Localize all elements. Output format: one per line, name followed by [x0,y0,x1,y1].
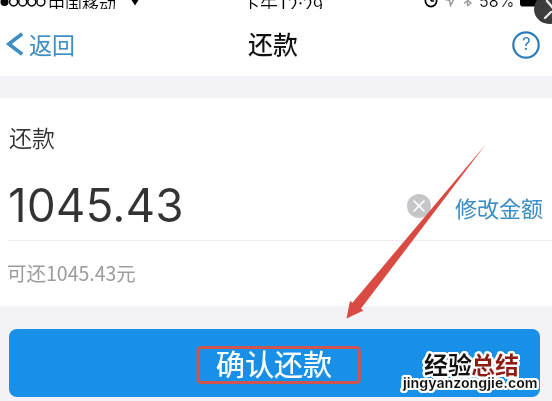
staticText: 总结 [473,345,521,380]
staticText: jingyanzongjie.com [403,376,538,393]
staticText: jingyanzongjie.com [404,376,539,393]
staticText: 总结 [472,347,520,382]
staticText: jingyanzongjie.com [401,375,536,392]
staticText: 总结 [471,345,519,380]
button[interactable]: 确认还款 [9,329,540,397]
staticText: jingyanzongjie.com [401,373,536,390]
staticText: jingyanzongjie.com [403,375,538,392]
staticText: 经验 [423,344,471,379]
staticText: jingyanzongjie.com [404,375,539,392]
button[interactable]: 返回 [7,27,75,60]
staticText: 经验 [422,345,470,380]
staticText: 总结 [471,346,519,381]
staticText: jingyanzongjie.com [405,373,540,390]
staticText: jingyanzongjie.com [402,373,537,390]
staticText: 总结 [472,344,520,379]
staticText: jingyanzongjie.com [403,372,538,389]
staticText: jingyanzongjie.com [403,373,538,390]
staticText: jingyanzongjie.com [402,376,537,393]
staticText: 经验 [423,345,471,380]
staticText: 总结 [471,346,519,381]
staticText: 经验 [426,346,474,381]
staticText: 经验 [424,344,472,379]
staticText: jingyanzongjie.com [402,374,537,391]
staticText: 经验 [425,346,473,381]
staticText: 可还1045.43元 [7,258,136,286]
staticText: jingyanzongjie.com [404,372,539,389]
staticText: 58% [479,0,515,9]
staticText: 确认还款 [216,342,333,384]
staticText: 中国移动 [48,0,116,9]
staticText: 经验 [423,347,471,382]
staticText: 总结 [472,346,520,381]
staticText: 经验 [422,346,470,381]
staticText: 总结 [470,347,518,382]
staticText: ? [522,34,531,55]
staticText: 总结 [470,348,518,383]
staticText: 经验 [424,348,472,383]
staticText: 总结 [473,347,521,382]
staticText: 经验 [425,347,473,382]
staticText: 经验 [423,348,471,383]
staticText: jingyanzongjie.com [403,374,538,391]
staticText: jingyanzongjie.com [404,374,539,391]
staticText: 经验 [425,344,473,379]
staticText: 总结 [471,344,519,379]
staticText: 总结 [469,347,517,382]
staticText: 修改金额 [455,191,544,223]
staticText: 下午12:29 [242,0,323,9]
staticText: 总结 [470,346,518,381]
staticText: 还款 [248,25,299,61]
button[interactable]: Help [512,31,540,59]
staticText: 总结 [470,345,518,380]
button[interactable]: Clear amount [407,194,431,218]
staticText: 总结 [469,346,517,381]
staticText: jingyanzongjie.com [403,374,538,391]
staticText: 经验 [426,347,474,382]
button[interactable]: 修改金额 [455,191,544,223]
staticText: 经验 [422,347,470,382]
staticText: 经验 [424,347,472,382]
staticText: 总结 [471,348,519,383]
staticText: jingyanzongjie.com [401,374,536,391]
staticText: jingyanzongjie.com [404,373,539,390]
staticText: 总结 [472,348,520,383]
staticText: jingyanzongjie.com [402,375,537,392]
staticText: 总结 [469,345,517,380]
staticText: jingyanzongjie.com [405,374,540,391]
staticText: 总结 [470,344,518,379]
staticText: 经验 [425,348,473,383]
staticText: 还款 [9,120,55,153]
staticText: 总结 [472,345,520,380]
staticText: jingyanzongjie.com [405,375,540,392]
staticText: 经验 [425,345,473,380]
staticText: 经验 [424,346,472,381]
staticText: jingyanzongjie.com [402,372,537,389]
staticText: 经验 [423,346,471,381]
staticText: 返回 [29,27,75,60]
staticText: 1045.43 [8,177,184,233]
staticText: 总结 [471,347,519,382]
staticText: 经验 [424,345,472,380]
staticText: 经验 [424,346,472,381]
staticText: 经验 [426,345,474,380]
staticText: 总结 [473,346,521,381]
